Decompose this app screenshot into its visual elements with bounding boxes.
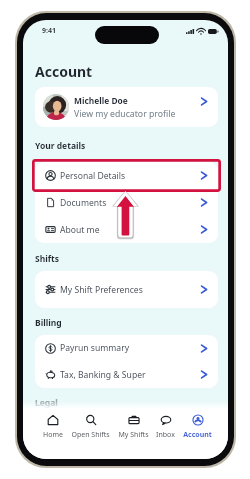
staticText: About me xyxy=(60,224,100,236)
staticText: Documents xyxy=(60,197,107,209)
button[interactable]: Personal Details xyxy=(35,162,218,189)
staticText: Your details xyxy=(35,140,86,152)
button[interactable]: Michelle Doe xyxy=(35,87,218,127)
staticText: Inbox xyxy=(156,430,175,440)
button[interactable]: Account xyxy=(183,409,212,459)
staticText: Payrun summary xyxy=(60,342,130,354)
staticText: Personal Details xyxy=(60,170,126,182)
staticText: Home xyxy=(43,430,63,440)
staticText: Account xyxy=(183,430,212,440)
button[interactable]: Documents xyxy=(35,189,218,216)
staticText: Legal xyxy=(35,397,58,409)
staticText: Michelle Doe xyxy=(74,95,128,106)
staticText: Account xyxy=(35,62,93,81)
button[interactable]: Payrun summary xyxy=(35,335,218,361)
staticText: My Shifts xyxy=(118,430,149,440)
button[interactable]: Open Shifts xyxy=(71,409,110,459)
staticText: View my educator profile xyxy=(74,108,176,120)
staticText: Shifts xyxy=(35,253,59,265)
staticText: Open Shifts xyxy=(71,430,110,440)
button[interactable]: About me xyxy=(35,216,218,243)
button[interactable]: Home xyxy=(43,409,63,459)
staticText: Tax, Banking & Super xyxy=(60,369,146,381)
staticText: 9:41 xyxy=(42,26,56,36)
button[interactable]: My Shifts xyxy=(118,409,149,459)
button[interactable]: My Shift Preferences xyxy=(35,271,218,308)
staticText: Billing xyxy=(35,317,62,329)
button[interactable]: Inbox xyxy=(156,409,175,459)
button[interactable]: Tax, Banking & Super xyxy=(35,361,218,388)
staticText: My Shift Preferences xyxy=(60,284,143,296)
